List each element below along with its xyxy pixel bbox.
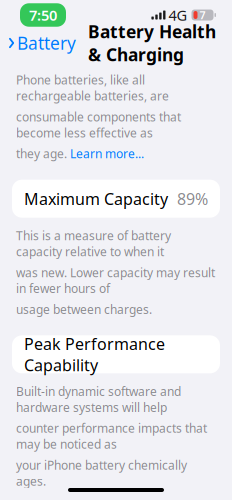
staticText: counter performance impacts that may be … (16, 420, 207, 452)
staticText: This is a measure of battery capacity re… (16, 228, 171, 260)
staticText: Peak Performance Capability (24, 333, 165, 376)
staticText: Learn more... (70, 146, 144, 162)
button[interactable]: Battery (0, 27, 76, 58)
staticText: Maximum Capacity (24, 188, 168, 209)
staticText: 7:50 (29, 5, 57, 25)
staticText: 7 (199, 8, 205, 22)
staticText: Built-in dynamic software and hardware s… (16, 383, 181, 415)
staticText: Phone batteries, like all rechargeable b… (16, 72, 169, 104)
staticText: your iPhone battery chemically ages. (16, 457, 187, 489)
staticText: consumable components that become less e… (16, 109, 181, 141)
staticText: usage between charges. (16, 301, 152, 317)
staticText: Battery (17, 31, 76, 54)
staticText: was new. Lower capacity may result in fe… (16, 264, 215, 296)
staticText: Battery Health & Charging (88, 20, 216, 66)
staticText: they age. (16, 146, 70, 162)
button[interactable]: Learn more... (70, 146, 144, 162)
staticText: 89% (177, 188, 208, 209)
staticText: 4G (168, 5, 187, 25)
